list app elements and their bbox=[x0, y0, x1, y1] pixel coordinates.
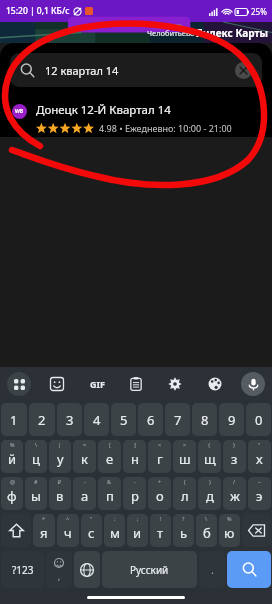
button[interactable]: Clear search bbox=[235, 62, 252, 79]
button[interactable]: = bbox=[73, 440, 96, 473]
staticText: ~ bbox=[258, 478, 262, 485]
button[interactable]: | bbox=[49, 440, 71, 473]
button[interactable]: " bbox=[81, 514, 102, 547]
button[interactable]: 7 bbox=[165, 403, 190, 436]
staticText: # bbox=[34, 478, 38, 485]
staticText: л bbox=[181, 487, 189, 505]
button[interactable]: \ bbox=[25, 440, 47, 473]
staticText: > bbox=[183, 441, 187, 448]
staticText: } bbox=[233, 441, 236, 448]
button[interactable]: Change language bbox=[74, 551, 100, 588]
staticText: ц bbox=[32, 450, 40, 468]
button[interactable]: { bbox=[198, 440, 221, 473]
button[interactable]: + bbox=[148, 477, 171, 510]
staticText: ; bbox=[137, 515, 139, 522]
staticText: ы bbox=[31, 487, 41, 505]
staticText: + bbox=[158, 478, 162, 485]
button[interactable]: 8 bbox=[192, 403, 217, 436]
staticText: Челобитьево bbox=[147, 28, 195, 38]
button[interactable]: Stickers bbox=[44, 371, 70, 397]
staticText: 5 bbox=[120, 411, 128, 429]
staticText: " bbox=[258, 441, 261, 448]
staticText: \ bbox=[205, 515, 208, 522]
button[interactable]: 12 квартал 14 bbox=[10, 53, 262, 87]
button[interactable]: Shift bbox=[1, 514, 31, 547]
button[interactable]: Settings bbox=[162, 371, 188, 397]
staticText: ж bbox=[230, 487, 240, 505]
button[interactable]: ; bbox=[127, 514, 148, 547]
button[interactable]: Emoji bbox=[46, 551, 72, 588]
staticText: 7 bbox=[174, 411, 182, 429]
button[interactable]: % bbox=[219, 514, 240, 547]
button[interactable]: ] bbox=[123, 440, 146, 473]
button[interactable]: ! bbox=[150, 514, 171, 547]
button[interactable]: # bbox=[25, 477, 47, 510]
staticText: & bbox=[107, 478, 112, 485]
staticText: п bbox=[106, 487, 114, 505]
button[interactable]: % bbox=[1, 440, 23, 473]
button[interactable]: \ bbox=[196, 514, 217, 547]
staticText: р bbox=[131, 487, 139, 505]
button[interactable]: : bbox=[104, 514, 125, 547]
staticText: 12 квартал 14 bbox=[45, 63, 119, 78]
button[interactable]: 9 bbox=[219, 403, 244, 436]
button[interactable]: ^ bbox=[57, 514, 79, 547]
button[interactable]: ) bbox=[198, 477, 221, 510]
staticText: я bbox=[40, 524, 48, 542]
staticText: 3 bbox=[66, 411, 74, 429]
button[interactable]: & bbox=[98, 477, 121, 510]
button[interactable]: Search bbox=[227, 551, 271, 588]
button[interactable]: Menu bbox=[7, 372, 31, 396]
staticText: з bbox=[231, 450, 238, 468]
button[interactable]: WB bbox=[0, 99, 272, 137]
staticText: GIF bbox=[90, 378, 105, 390]
staticText: ? bbox=[182, 515, 185, 522]
staticText: 0 bbox=[255, 411, 263, 429]
staticText: о bbox=[156, 487, 164, 505]
button[interactable]: Themes bbox=[202, 371, 228, 397]
button[interactable]: > bbox=[173, 440, 196, 473]
staticText: 25% bbox=[251, 6, 267, 17]
button[interactable]: GIF bbox=[84, 371, 110, 397]
button[interactable]: Voice input bbox=[241, 372, 265, 396]
button[interactable]: 5 bbox=[111, 403, 136, 436]
button[interactable]: " bbox=[248, 440, 271, 473]
staticText: и bbox=[133, 524, 142, 542]
button[interactable]: } bbox=[223, 440, 246, 473]
staticText: н bbox=[131, 450, 139, 468]
button[interactable]: 3 bbox=[57, 403, 82, 436]
button[interactable]: / bbox=[223, 477, 246, 510]
staticText: 4.98 • Ежедневно: 10:00 - 21:00 bbox=[99, 122, 232, 134]
button[interactable]: Clipboard bbox=[123, 371, 149, 397]
staticText: @ bbox=[10, 478, 15, 485]
button[interactable]: ~ bbox=[248, 477, 271, 510]
button[interactable]: Backspace bbox=[242, 514, 271, 547]
staticText: ?123 bbox=[12, 563, 34, 577]
staticText: м bbox=[110, 524, 120, 542]
button[interactable]: 1 bbox=[1, 403, 27, 436]
button[interactable]: - bbox=[123, 477, 146, 510]
staticText: . bbox=[211, 562, 214, 577]
button[interactable]: 4 bbox=[84, 403, 109, 436]
button[interactable]: ?123 bbox=[1, 551, 44, 588]
staticText: \ bbox=[35, 441, 38, 448]
button[interactable]: ₽ bbox=[49, 477, 71, 510]
button[interactable]: * bbox=[33, 514, 55, 547]
button[interactable]: [ bbox=[98, 440, 121, 473]
staticText: ( bbox=[184, 478, 186, 485]
button[interactable]: ? bbox=[173, 514, 194, 547]
button[interactable]: . bbox=[199, 551, 225, 588]
button[interactable]: 0 bbox=[246, 403, 271, 436]
button[interactable]: - bbox=[73, 477, 96, 510]
staticText: ю bbox=[224, 524, 235, 542]
button[interactable]: @ bbox=[1, 477, 23, 510]
staticText: ш bbox=[179, 450, 191, 468]
staticText: б bbox=[203, 524, 211, 542]
button[interactable]: Русский bbox=[102, 551, 197, 588]
button[interactable]: 6 bbox=[138, 403, 163, 436]
staticText: - bbox=[84, 478, 86, 485]
staticText: ) bbox=[209, 478, 211, 485]
button[interactable]: < bbox=[148, 440, 171, 473]
button[interactable]: 2 bbox=[29, 403, 55, 436]
button[interactable]: ( bbox=[173, 477, 196, 510]
